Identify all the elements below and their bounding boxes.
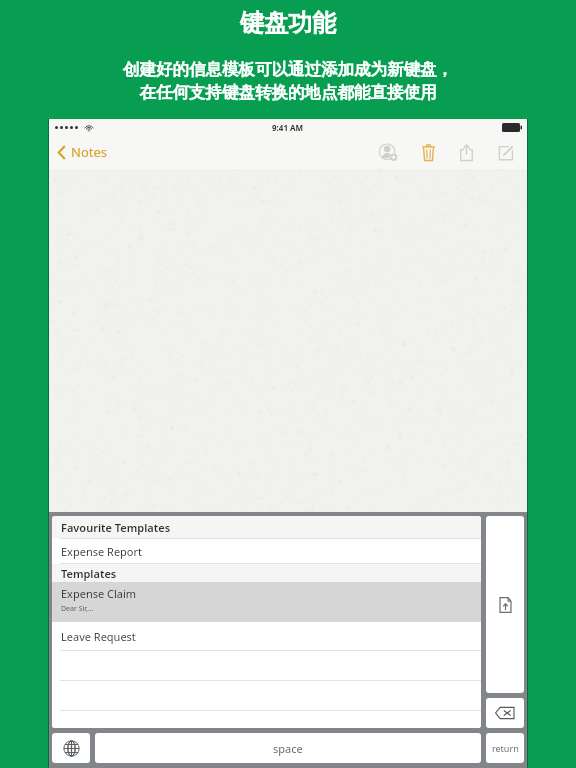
button[interactable]: Insert template bbox=[486, 516, 524, 693]
staticText: Expense Report bbox=[61, 544, 143, 559]
staticText: 键盘功能 bbox=[0, 8, 576, 38]
staticText: Expense Claim bbox=[61, 586, 137, 601]
button[interactable]: Share bbox=[454, 138, 479, 167]
staticText: 创建好的信息模板可以通过添加成为新键盘， 在任何支持键盘转换的地点都能直接使用 bbox=[0, 59, 576, 103]
staticText: 9:41 AM bbox=[272, 122, 304, 133]
button[interactable]: Templates bbox=[52, 564, 481, 582]
button[interactable]: Favourite Templates bbox=[52, 516, 481, 538]
button[interactable]: Leave Request bbox=[52, 622, 481, 650]
button[interactable]: Delete bbox=[416, 138, 441, 167]
button[interactable]: Add people bbox=[374, 138, 403, 167]
button[interactable]: return bbox=[486, 733, 524, 763]
button[interactable]: Notes bbox=[56, 139, 109, 165]
button[interactable]: Compose bbox=[492, 139, 520, 167]
button[interactable]: Backspace bbox=[486, 698, 524, 728]
staticText: Notes bbox=[71, 143, 107, 161]
staticText: Dear Sir,... bbox=[61, 604, 94, 614]
staticText: Templates bbox=[61, 566, 117, 581]
staticText: space bbox=[273, 741, 303, 756]
button[interactable]: space bbox=[95, 733, 481, 763]
button[interactable]: Expense Report bbox=[52, 539, 481, 563]
staticText: return bbox=[492, 742, 519, 754]
staticText: Favourite Templates bbox=[61, 520, 171, 535]
button[interactable]: Switch keyboard bbox=[52, 733, 90, 763]
staticText: Leave Request bbox=[61, 629, 136, 644]
button[interactable]: Expense Claim bbox=[52, 582, 481, 622]
